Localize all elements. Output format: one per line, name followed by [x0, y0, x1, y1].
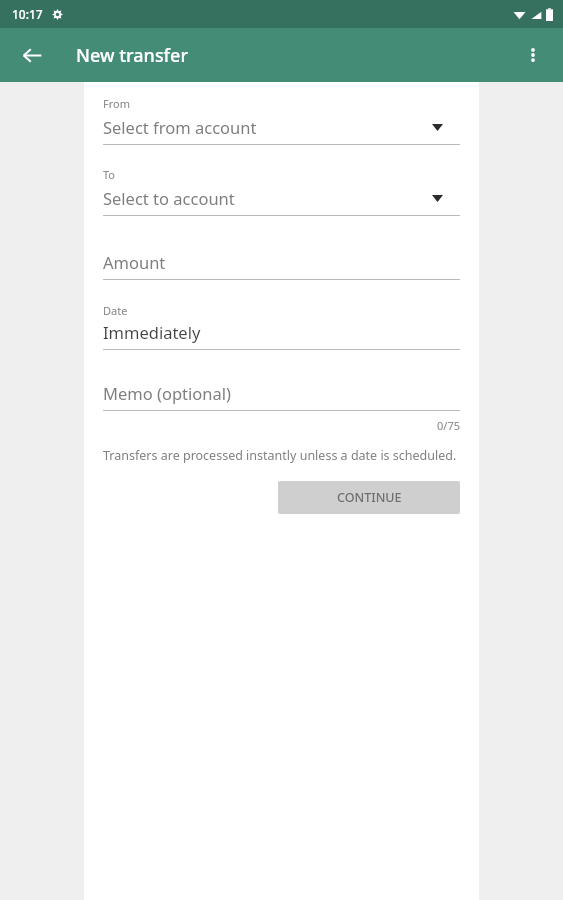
button[interactable]: Amount [103, 251, 460, 280]
staticText: From [103, 96, 130, 111]
staticText: Select from account [103, 116, 432, 138]
staticText: Memo (optional) [103, 382, 231, 404]
button[interactable]: CONTINUE [278, 481, 460, 514]
staticText: Select to account [103, 187, 432, 209]
staticText: New transfer [76, 43, 188, 68]
staticText: To [103, 167, 116, 182]
button[interactable]: Back [10, 33, 54, 77]
button[interactable]: Select to account [103, 187, 460, 216]
staticText: Date [103, 303, 128, 318]
button[interactable]: Immediately [103, 321, 460, 350]
staticText: 0/75 [103, 418, 460, 433]
staticText: Immediately [103, 321, 201, 343]
staticText: CONTINUE [337, 489, 402, 506]
button[interactable]: Memo (optional) [103, 382, 460, 411]
staticText: Transfers are processed instantly unless… [103, 447, 457, 464]
button[interactable]: Select from account [103, 116, 460, 145]
button[interactable]: More options [511, 33, 555, 77]
staticText: Amount [103, 251, 166, 273]
staticText: 10:17 [12, 6, 43, 22]
